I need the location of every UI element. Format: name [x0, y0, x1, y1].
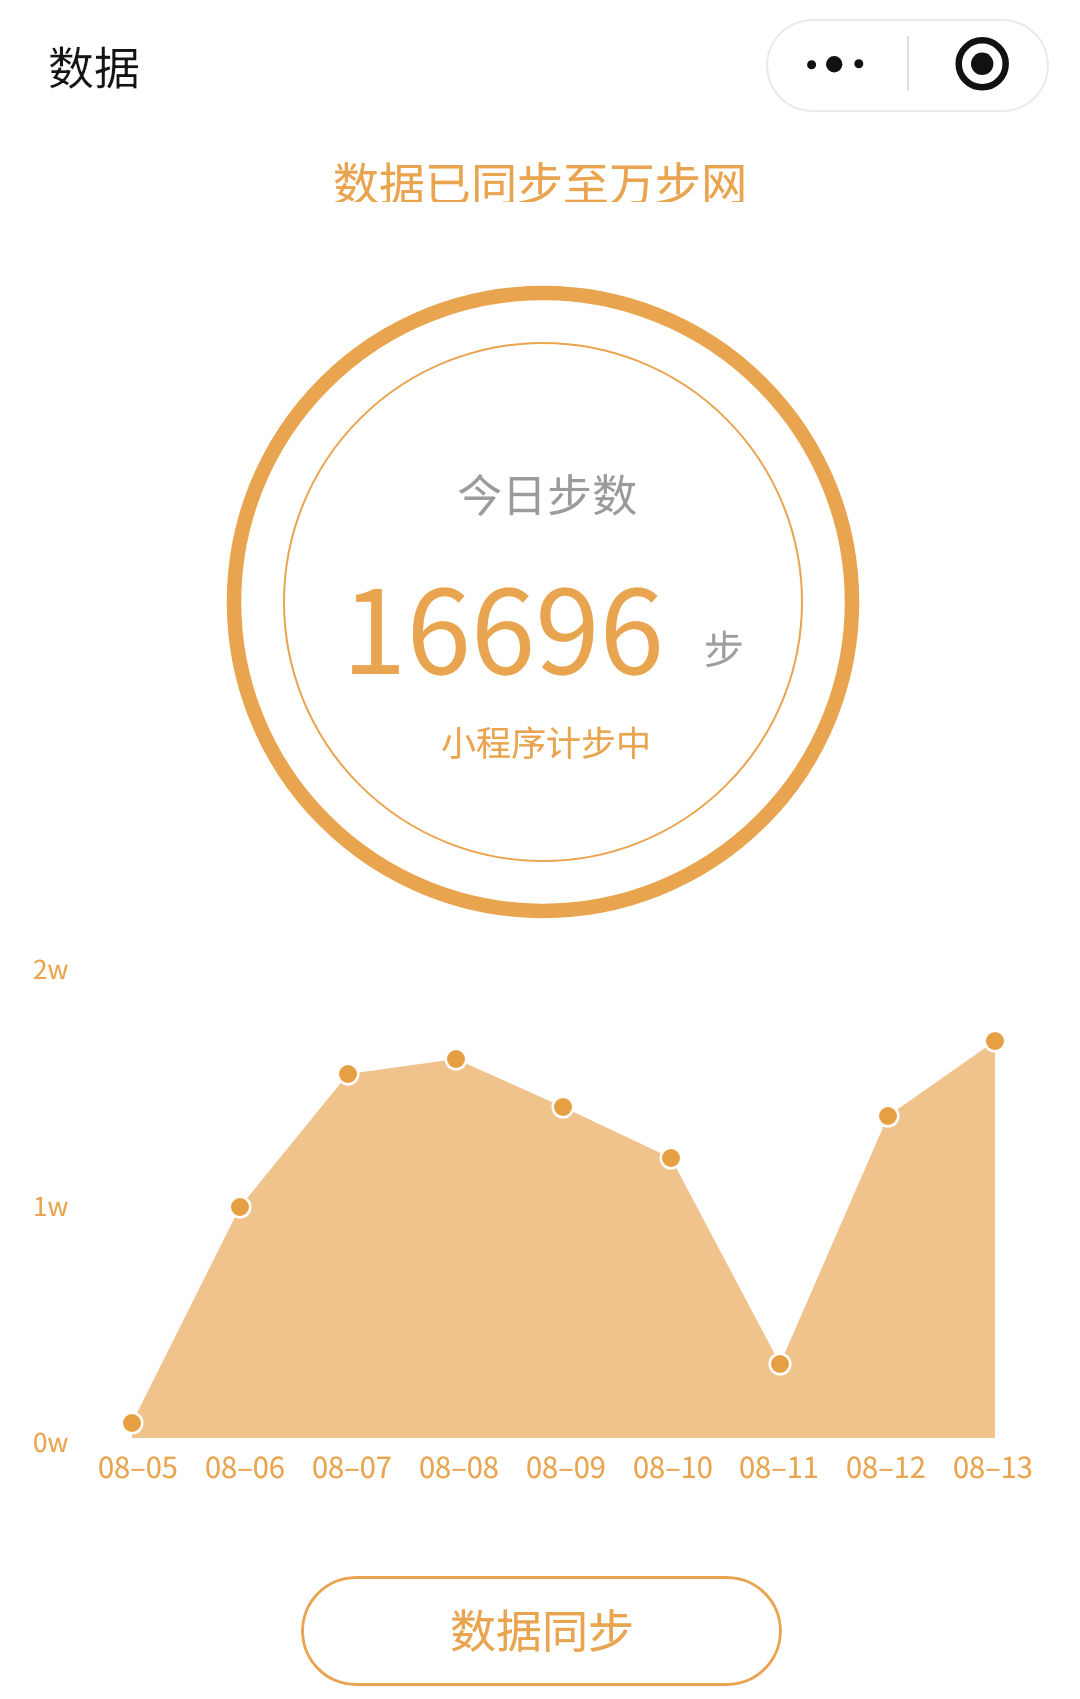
staticText: 数据同步	[450, 1595, 634, 1662]
staticText: 08–08	[419, 1444, 499, 1486]
staticText: 0w	[33, 1422, 69, 1460]
staticText: 16696	[342, 539, 664, 707]
staticText: 数据已同步至万步网	[333, 148, 747, 202]
staticText: 1w	[33, 1186, 69, 1224]
staticText: 小程序计步中	[441, 715, 652, 766]
staticText: 08–06	[205, 1444, 285, 1486]
staticText: 08–09	[526, 1444, 606, 1486]
staticText: 08–13	[953, 1444, 1033, 1486]
staticText: 数据	[48, 32, 140, 92]
staticText: 08–11	[739, 1444, 819, 1486]
staticText: 08–12	[846, 1444, 926, 1486]
staticText: 2w	[33, 949, 69, 987]
staticText: 步	[704, 618, 744, 674]
button[interactable]: 数据同步	[301, 1576, 782, 1686]
button[interactable]	[766, 19, 1049, 112]
staticText: 08–10	[633, 1444, 713, 1486]
staticText: 08–07	[312, 1444, 392, 1486]
staticText: 今日步数	[457, 460, 638, 516]
staticText: 08–05	[98, 1444, 178, 1486]
